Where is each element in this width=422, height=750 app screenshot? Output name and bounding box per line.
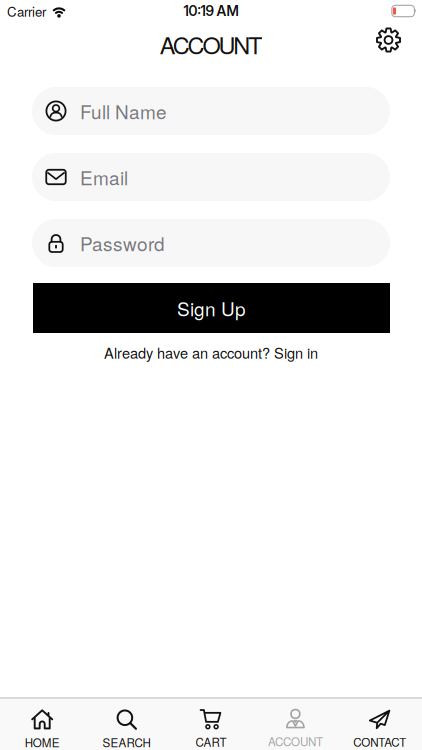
staticText: ACCOUNT <box>160 27 262 61</box>
staticText: Password <box>80 229 165 257</box>
staticText: Full Name <box>80 97 167 125</box>
staticText: Already have an account? Sign in <box>104 342 318 363</box>
staticText: Sign Up <box>177 294 246 322</box>
staticText: Carrier <box>7 1 46 20</box>
button[interactable]: Password <box>32 219 390 267</box>
button[interactable]: CART <box>169 708 253 750</box>
button[interactable]: CONTACT <box>338 708 422 750</box>
staticText: Email <box>80 163 128 191</box>
button[interactable]: HOME <box>0 708 84 750</box>
staticText: SEARCH <box>103 734 151 750</box>
staticText: CONTACT <box>353 733 406 750</box>
button[interactable]: Sign Up <box>33 283 390 333</box>
staticText: HOME <box>25 734 60 750</box>
staticText: CART <box>195 733 226 750</box>
staticText: 10:19 AM <box>183 2 238 19</box>
staticText: ACCOUNT <box>268 733 323 749</box>
button[interactable]: Already have an account? Sign in <box>104 342 318 363</box>
button[interactable]: SEARCH <box>84 708 169 750</box>
button[interactable]: Settings <box>376 27 401 52</box>
button[interactable]: Full Name <box>32 87 390 135</box>
button[interactable]: ACCOUNT <box>253 709 338 749</box>
button[interactable]: Email <box>32 153 390 201</box>
